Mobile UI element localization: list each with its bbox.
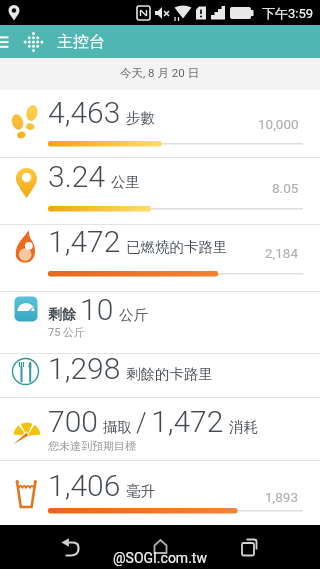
staticText: 攝取 — [103, 418, 132, 436]
staticText: 75 公斤 — [48, 325, 86, 339]
staticText: 1,472 — [48, 224, 121, 259]
staticText: 剩餘的卡路里 — [126, 365, 213, 383]
staticText: 公斤 — [119, 306, 148, 324]
staticText: 10,000 — [258, 116, 299, 132]
button[interactable]: 1,298 — [0, 354, 320, 397]
staticText: 1,406 — [48, 468, 121, 503]
button[interactable]: 1,406 — [0, 461, 320, 525]
staticText: 毫升 — [126, 482, 155, 500]
staticText: 1,472 — [151, 404, 224, 439]
staticText: 下午3:59 — [262, 5, 314, 21]
staticText: 已燃燒的卡路里 — [126, 238, 228, 256]
staticText: 2,184 — [265, 245, 299, 261]
staticText: 4,463 — [48, 95, 121, 130]
button[interactable]: 700 — [0, 398, 320, 460]
button[interactable]: 剩餘 — [0, 292, 320, 353]
button[interactable]: 主控台 — [0, 25, 320, 58]
staticText: 700 — [48, 404, 98, 439]
button[interactable]: 1,472 — [0, 225, 320, 291]
button[interactable]: 3.24 — [0, 158, 320, 224]
staticText: 公里 — [111, 173, 140, 191]
button[interactable]: 4,463 — [0, 90, 320, 157]
staticText: 剩餘 — [48, 306, 76, 324]
staticText: 消耗 — [229, 418, 258, 436]
staticText: 1,893 — [265, 489, 299, 505]
staticText: 3.24 — [48, 159, 106, 194]
staticText: 今天, 8 月 20 日 — [120, 66, 200, 80]
staticText: @SOGI.com.tw — [113, 550, 207, 566]
staticText: / — [136, 407, 147, 439]
staticText: 您未達到預期目標 — [48, 439, 136, 453]
staticText: 10 — [80, 292, 114, 327]
staticText: 8.05 — [272, 180, 299, 196]
staticText: 主控台 — [57, 32, 105, 52]
staticText: 步數 — [126, 109, 155, 127]
button[interactable] — [106, 525, 213, 569]
button[interactable] — [213, 525, 320, 569]
staticText: 1,298 — [48, 351, 121, 386]
button[interactable] — [0, 525, 106, 569]
